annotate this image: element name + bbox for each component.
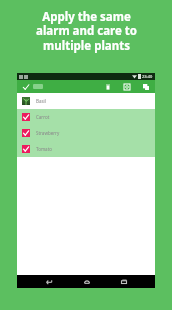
button[interactable]: Set alarm [121,81,132,92]
button[interactable]: Basil [17,93,155,109]
staticText: Strawberry [36,130,60,136]
staticText: Basil [36,98,46,104]
button[interactable]: Delete [102,81,113,92]
staticText: Apply the same alarm and care to multipl… [36,9,137,54]
button[interactable]: Back [42,275,55,288]
button[interactable]: Strawberry [17,125,155,141]
button[interactable]: Home [80,275,93,288]
staticText: Tomato [36,146,52,152]
staticText: 23:40 [142,74,153,79]
button[interactable]: Tomato [17,141,155,157]
button[interactable]: More options [140,81,151,92]
button[interactable]: Carrot [17,109,155,125]
button[interactable]: Recent apps [117,275,130,288]
button[interactable]: Done [20,81,31,92]
staticText: Carrot [36,114,50,120]
